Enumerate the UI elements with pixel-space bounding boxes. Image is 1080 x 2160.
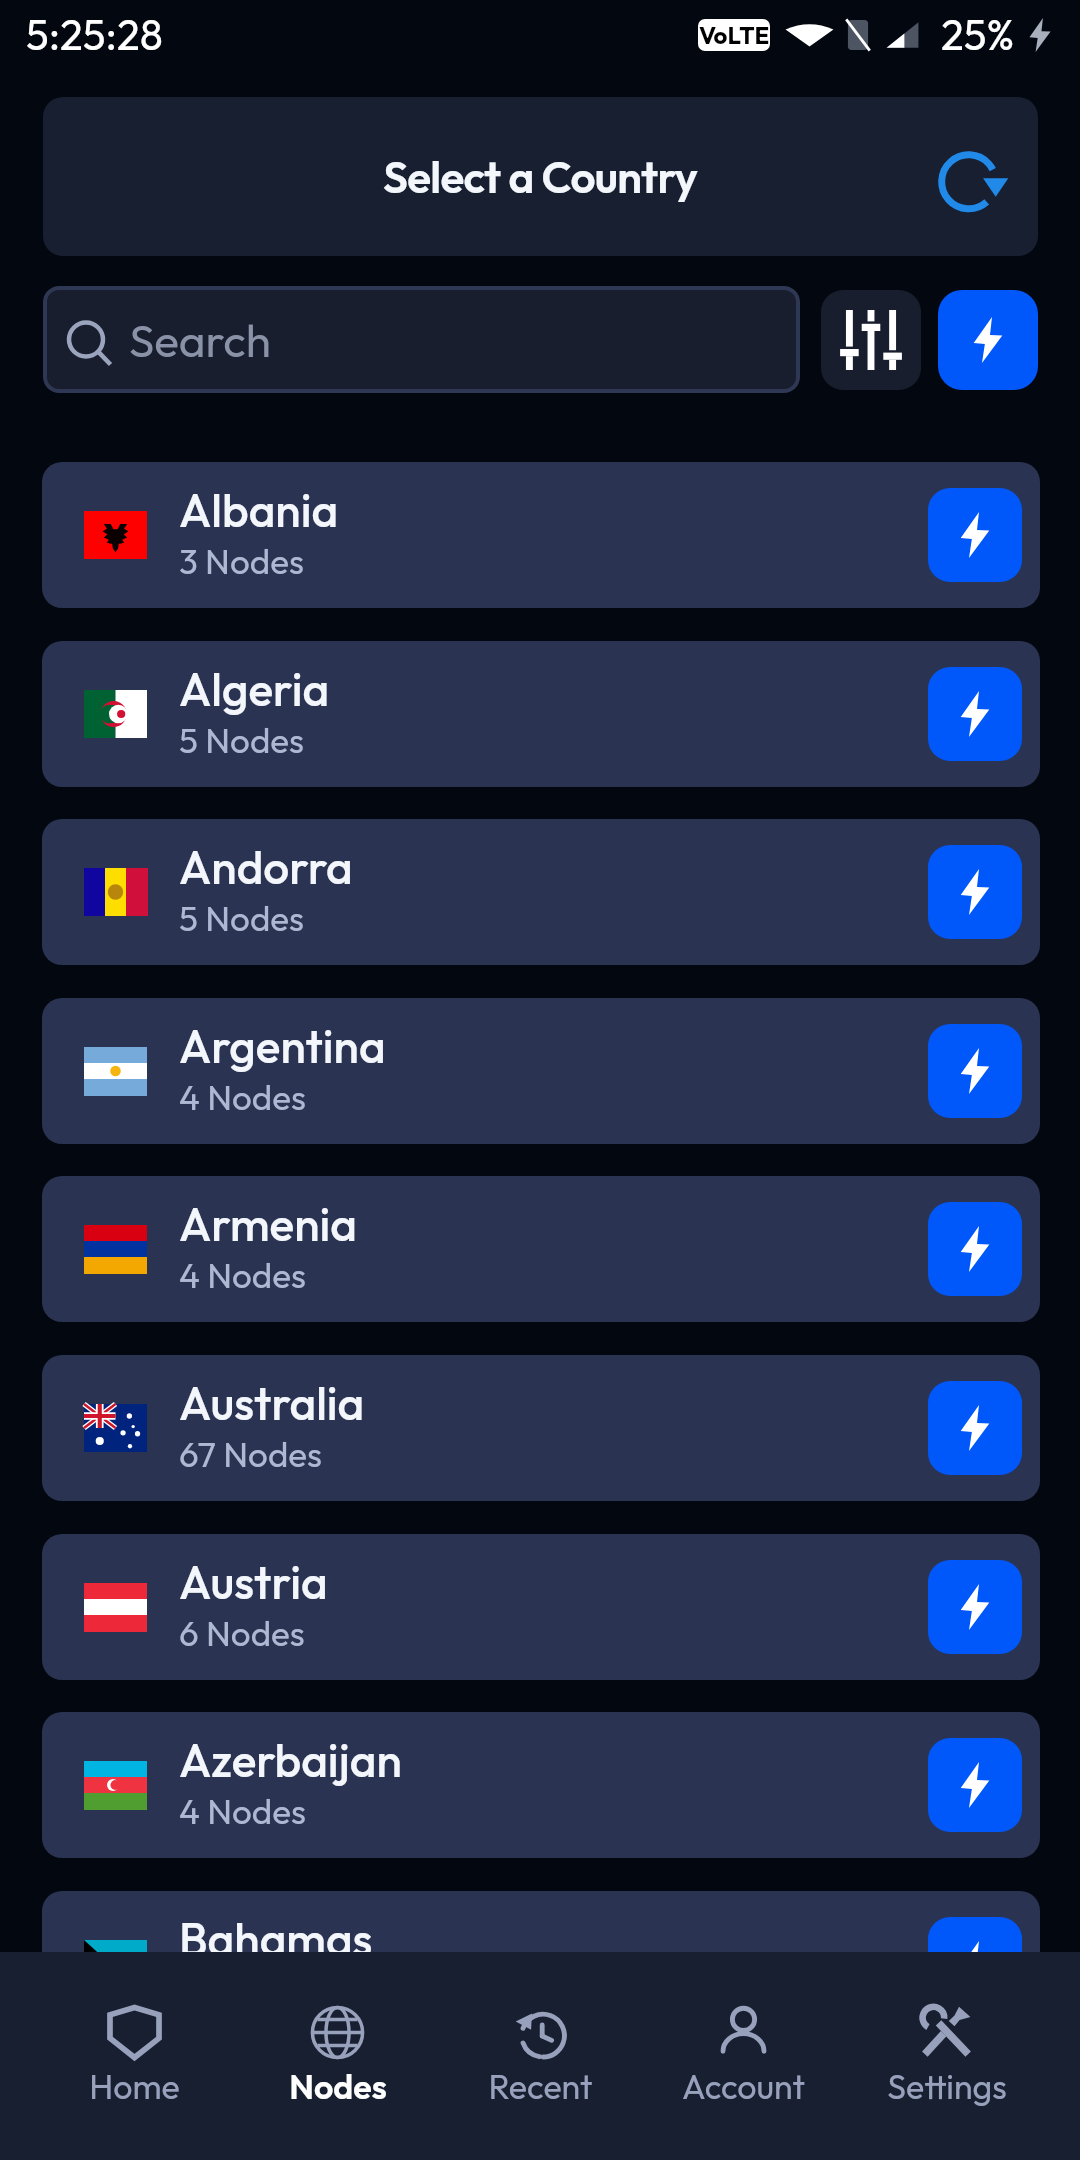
- staticText: Andorra: [179, 838, 353, 896]
- button[interactable]: Refresh: [928, 130, 1022, 224]
- button[interactable]: Settings: [845, 1952, 1048, 2160]
- button[interactable]: Austria: [42, 1534, 1040, 1680]
- button[interactable]: Azerbaijan: [42, 1712, 1040, 1858]
- staticText: 5:25:28: [26, 8, 163, 61]
- staticText: Azerbaijan: [179, 1731, 402, 1789]
- staticText: Austria: [179, 1553, 328, 1611]
- button[interactable]: Algeria: [42, 641, 1040, 787]
- staticText: 4 Nodes: [179, 1253, 306, 1297]
- staticText: Bahamas: [179, 1910, 373, 1968]
- staticText: Recent: [488, 2065, 593, 2108]
- staticText: Australia: [179, 1374, 365, 1432]
- staticText: Armenia: [179, 1195, 357, 1253]
- button[interactable]: Connect to Algeria: [928, 667, 1022, 761]
- staticText: Albania: [179, 481, 339, 539]
- staticText: 25%: [941, 8, 1015, 61]
- staticText: 3 Nodes: [179, 539, 304, 583]
- button[interactable]: Connect to Austria: [928, 1560, 1022, 1654]
- button[interactable]: Argentina: [42, 998, 1040, 1144]
- staticText: Account: [682, 2065, 805, 2108]
- button[interactable]: Connect to Argentina: [928, 1024, 1022, 1118]
- staticText: Argentina: [179, 1017, 386, 1075]
- staticText: 5 Nodes: [179, 896, 304, 940]
- button[interactable]: Connect to Azerbaijan: [928, 1738, 1022, 1832]
- staticText: 67 Nodes: [179, 1432, 322, 1476]
- button[interactable]: Armenia: [42, 1176, 1040, 1322]
- staticText: Algeria: [179, 660, 330, 718]
- staticText: VoLTE: [699, 20, 770, 50]
- staticText: 4 Nodes: [179, 1789, 306, 1833]
- staticText: Search: [129, 311, 272, 369]
- staticText: Settings: [887, 2065, 1007, 2108]
- staticText: Home: [89, 2065, 180, 2108]
- button[interactable]: Andorra: [42, 819, 1040, 965]
- button[interactable]: Connect to Bahamas: [928, 1917, 1022, 2011]
- button[interactable]: Nodes: [236, 1952, 439, 2160]
- button[interactable]: Search: [43, 286, 800, 393]
- staticText: 4 Nodes: [179, 1075, 306, 1119]
- button[interactable]: Account: [642, 1952, 845, 2160]
- button[interactable]: Quick connect: [938, 290, 1038, 390]
- button[interactable]: Connect to Australia: [928, 1381, 1022, 1475]
- button[interactable]: Bahamas: [42, 1891, 1040, 2037]
- button[interactable]: Connect to Albania: [928, 488, 1022, 582]
- staticText: 5 Nodes: [179, 718, 304, 762]
- staticText: Select a Country: [383, 149, 698, 204]
- button[interactable]: Albania: [42, 462, 1040, 608]
- button[interactable]: Home: [32, 1952, 236, 2160]
- button[interactable]: Filter: [821, 290, 921, 390]
- staticText: Nodes: [289, 2065, 387, 2108]
- button[interactable]: Connect to Andorra: [928, 845, 1022, 939]
- button[interactable]: Australia: [42, 1355, 1040, 1501]
- button[interactable]: Recent: [439, 1952, 642, 2160]
- staticText: 6 Nodes: [179, 1611, 305, 1655]
- button[interactable]: Connect to Armenia: [928, 1202, 1022, 1296]
